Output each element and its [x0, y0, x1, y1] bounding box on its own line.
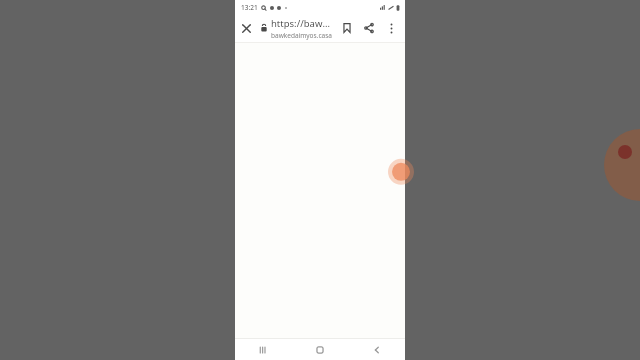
button[interactable]: Recent apps	[235, 339, 291, 360]
button[interactable]: Close	[235, 17, 257, 39]
staticText: bawkedaimyos.casa	[271, 31, 332, 40]
staticText: 13:21	[241, 3, 258, 12]
button[interactable]: Home	[291, 339, 348, 360]
button[interactable]: Back	[348, 339, 405, 360]
button[interactable]: https://bawkedai…	[271, 17, 332, 40]
button[interactable]: Bookmark	[336, 17, 358, 39]
button[interactable]: More options	[380, 17, 402, 39]
button[interactable]: Share	[358, 17, 380, 39]
staticText: https://bawkedai…	[271, 17, 332, 30]
